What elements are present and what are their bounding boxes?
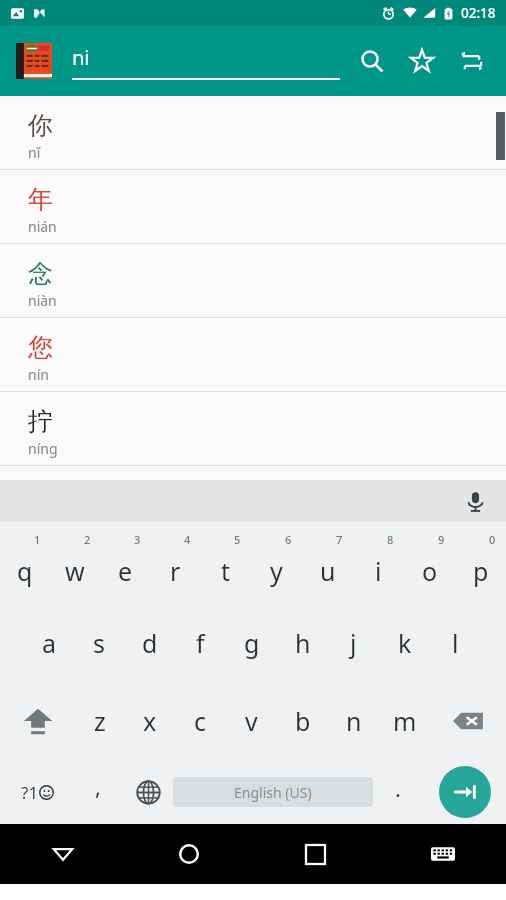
staticText: .	[395, 773, 401, 803]
staticText: v	[245, 704, 258, 738]
button[interactable]: Hide keyboard	[0, 824, 126, 884]
button[interactable]: 9	[404, 526, 455, 604]
staticText: r	[170, 554, 181, 588]
staticText: q	[17, 554, 33, 588]
button[interactable]: v	[226, 682, 277, 760]
staticText: niàn	[28, 291, 57, 310]
button[interactable]: 4	[150, 526, 200, 604]
staticText: ,	[95, 771, 101, 801]
staticText: p	[473, 554, 489, 588]
button[interactable]: Favorites	[400, 39, 444, 83]
button[interactable]: f	[175, 604, 226, 682]
button[interactable]: 念	[0, 244, 506, 318]
button[interactable]: Swap languages	[450, 39, 494, 83]
button[interactable]: 8	[353, 526, 404, 604]
button[interactable]: Search	[350, 39, 394, 83]
staticText: c	[194, 704, 207, 738]
staticText: 4	[184, 532, 191, 547]
button[interactable]: Change language	[123, 760, 173, 824]
button[interactable]: a	[24, 604, 74, 682]
button[interactable]: b	[277, 682, 328, 760]
button[interactable]: 您	[0, 318, 506, 392]
button[interactable]: x	[125, 682, 175, 760]
button[interactable]: 2	[50, 526, 100, 604]
button[interactable]: Shift	[0, 682, 75, 760]
staticText: 3	[134, 532, 141, 547]
button[interactable]: 3	[100, 526, 150, 604]
button[interactable]: 年	[0, 170, 506, 244]
button[interactable]: Backspace	[430, 682, 506, 760]
staticText: 02:18	[461, 4, 496, 22]
button[interactable]: h	[277, 604, 328, 682]
staticText: 9	[438, 532, 445, 547]
staticText: a	[42, 626, 57, 660]
button[interactable]: s	[74, 604, 124, 682]
staticText: ?1	[21, 781, 39, 804]
button[interactable]: Switch keyboard	[379, 824, 506, 884]
staticText: níng	[28, 439, 58, 458]
staticText: nín	[28, 365, 49, 384]
button[interactable]: 6	[251, 526, 302, 604]
button[interactable]: j	[328, 604, 379, 682]
button[interactable]: c	[175, 682, 226, 760]
button[interactable]: d	[124, 604, 175, 682]
staticText: 6	[285, 532, 292, 547]
staticText: 5	[234, 532, 241, 547]
button[interactable]: .	[373, 760, 423, 824]
staticText: u	[320, 554, 336, 588]
staticText: o	[422, 554, 438, 588]
staticText: b	[295, 704, 311, 738]
button[interactable]: Voice input	[458, 484, 492, 518]
staticText: nián	[28, 217, 57, 236]
staticText: h	[295, 626, 311, 660]
staticText: y	[270, 554, 283, 588]
staticText: g	[244, 626, 260, 660]
button[interactable]: k	[379, 604, 430, 682]
staticText: z	[94, 704, 106, 738]
staticText: 1	[34, 532, 41, 547]
staticText: l	[452, 626, 459, 660]
button[interactable]: English (US)	[173, 777, 373, 807]
button[interactable]: 拧	[0, 392, 506, 466]
staticText: 您	[28, 332, 53, 363]
button[interactable]: 你	[0, 96, 506, 170]
button[interactable]: 7	[302, 526, 353, 604]
button[interactable]: 0	[455, 526, 506, 604]
staticText: d	[142, 626, 158, 660]
button[interactable]: Recent apps	[252, 824, 379, 884]
button[interactable]: Enter	[423, 760, 506, 824]
button[interactable]: ,	[73, 760, 123, 824]
button[interactable]: ni	[72, 26, 340, 96]
staticText: k	[398, 626, 412, 660]
staticText: t	[221, 554, 231, 588]
button[interactable]: l	[430, 604, 481, 682]
staticText: n	[346, 704, 362, 738]
staticText: f	[196, 626, 205, 660]
button[interactable]: m	[379, 682, 430, 760]
button[interactable]: 1	[0, 526, 50, 604]
staticText: 年	[28, 184, 53, 215]
staticText: nǐ	[28, 143, 41, 162]
staticText: j	[350, 626, 357, 660]
staticText: 2	[84, 532, 91, 547]
staticText: 念	[28, 258, 53, 289]
staticText: e	[118, 554, 133, 588]
button[interactable]: Symbols and emoji	[0, 760, 73, 824]
button[interactable]: Home	[126, 824, 252, 884]
staticText: m	[393, 704, 417, 738]
button[interactable]: g	[226, 604, 277, 682]
staticText: w	[65, 554, 85, 588]
button[interactable]: App icon	[14, 41, 54, 81]
staticText: x	[143, 704, 157, 738]
staticText: ni	[72, 44, 90, 71]
staticText: s	[93, 626, 105, 660]
staticText: 0	[489, 532, 496, 547]
staticText: 你	[28, 110, 53, 141]
staticText: 7	[336, 532, 343, 547]
staticText: English (US)	[234, 783, 312, 802]
button[interactable]: z	[75, 682, 125, 760]
staticText: i	[375, 554, 382, 588]
button[interactable]: 5	[200, 526, 251, 604]
button[interactable]: n	[328, 682, 379, 760]
staticText: 8	[387, 532, 394, 547]
